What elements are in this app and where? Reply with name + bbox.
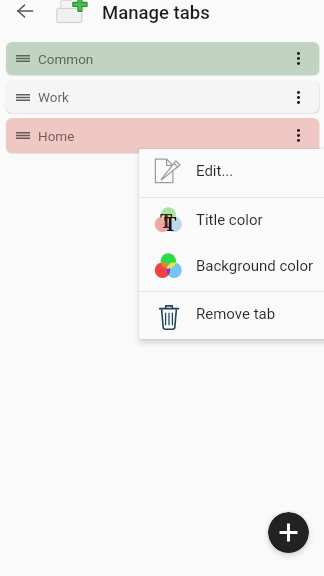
staticText: T (164, 211, 177, 237)
staticText: T (160, 208, 173, 234)
button[interactable]: Common (6, 42, 319, 75)
staticText: Remove tab (196, 305, 276, 323)
button[interactable]: Edit... (139, 149, 324, 197)
staticText: Work (38, 89, 69, 105)
button[interactable]: More options for Work (283, 81, 313, 113)
button[interactable]: More options for Home (283, 118, 313, 153)
staticText: Background color (196, 257, 314, 275)
button[interactable]: Work (6, 81, 319, 113)
button[interactable]: Remove tab (139, 292, 324, 339)
button[interactable]: More options for Common (283, 42, 313, 75)
button[interactable]: Add tab (268, 512, 309, 553)
staticText: Title color (196, 211, 263, 229)
button[interactable]: Background color (139, 245, 324, 291)
staticText: Common (38, 51, 94, 67)
staticText: Edit... (196, 162, 234, 180)
staticText: Home (38, 128, 75, 144)
button[interactable]: Home (6, 118, 319, 153)
button[interactable]: T (139, 198, 324, 245)
button[interactable]: Back (9, 0, 41, 27)
staticText: Manage tabs (102, 2, 210, 24)
